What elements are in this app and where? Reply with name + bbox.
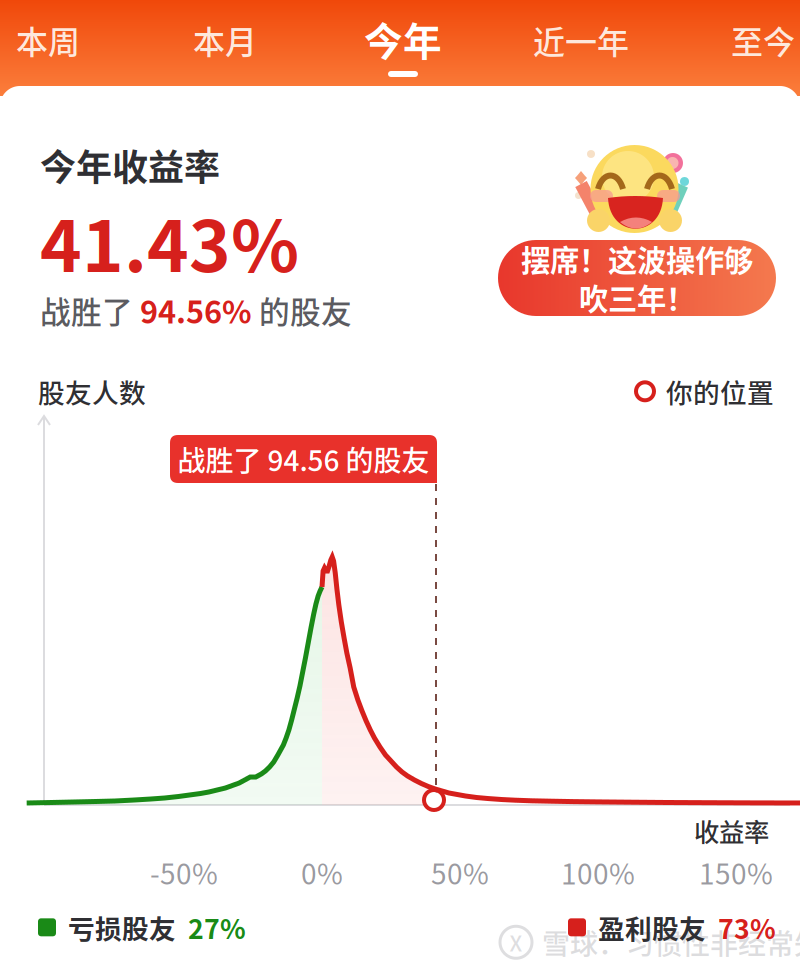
staticText: -50%	[150, 852, 218, 892]
staticText: 73%	[718, 908, 776, 947]
staticText: 战胜了 94.56 的股友	[177, 439, 429, 479]
staticText: 至今	[731, 17, 795, 63]
staticText: 今年	[364, 11, 442, 67]
staticText: 的股友	[252, 288, 352, 332]
button[interactable]: 近一年	[516, 5, 646, 91]
button[interactable]: 至今	[698, 5, 800, 91]
staticText: 股友人数	[38, 372, 146, 411]
staticText: 本周	[16, 17, 80, 63]
button[interactable]: 本周	[0, 5, 113, 91]
staticText: 你的位置	[666, 372, 774, 411]
staticText: 27%	[188, 908, 246, 947]
button[interactable]: 今年	[338, 5, 468, 91]
staticText: 0%	[301, 852, 343, 892]
staticText: 94.56%	[140, 288, 252, 332]
staticText: 近一年	[533, 17, 629, 63]
staticText: 盈利股友	[598, 908, 706, 947]
button[interactable]: 本月	[160, 5, 290, 91]
staticText: X	[509, 927, 522, 958]
staticText: 收益率	[694, 812, 769, 849]
staticText: 摆席！这波操作够	[521, 237, 753, 280]
staticText: 雪球：习惯性非经常失眠	[542, 922, 800, 962]
staticText: 亏损股友	[68, 908, 176, 947]
staticText: 战胜了	[40, 288, 140, 332]
staticText: 41.43%	[40, 190, 299, 292]
staticText: 吹三年！	[579, 276, 695, 318]
staticText: 今年收益率	[40, 139, 220, 191]
staticText: 本月	[193, 17, 257, 63]
staticText: 100%	[561, 852, 635, 892]
staticText: 50%	[431, 852, 489, 892]
staticText: 150%	[699, 852, 773, 892]
